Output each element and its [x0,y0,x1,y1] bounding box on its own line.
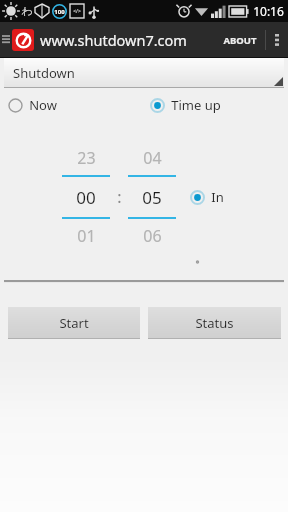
staticText: </> [73,8,81,15]
staticText: 100 [54,8,65,16]
button[interactable]: In [190,132,224,262]
button[interactable]: Start [8,307,140,339]
staticText: Time up [171,96,221,114]
staticText: 01 [77,225,96,247]
button[interactable]: More options [266,22,288,58]
button[interactable]: ABOUT [215,22,265,58]
staticText: 04 [143,147,162,169]
staticText: : [117,186,122,208]
staticText: Start [59,314,89,332]
staticText: 23 [77,147,96,169]
button[interactable]: Status [148,307,281,339]
staticText: 10:16 [253,3,284,19]
staticText: Status [195,314,234,332]
button[interactable]: Time up [150,92,288,118]
staticText: 06 [143,225,162,247]
staticText: Shutdown [13,64,75,82]
button[interactable]: Shutdown [4,58,284,88]
staticText: 05 [142,186,162,209]
button[interactable]: Menu [0,22,12,58]
staticText: 00 [76,186,96,209]
button[interactable]: App icon [12,29,34,51]
staticText: www.shutdown7.com [40,30,187,50]
button[interactable]: www.shutdown7.com [40,22,215,58]
button[interactable]: Now [8,92,144,118]
staticText: ABOUT [223,34,257,47]
staticText: わ [21,4,33,18]
staticText: Now [29,96,57,114]
staticText: In [211,188,224,206]
